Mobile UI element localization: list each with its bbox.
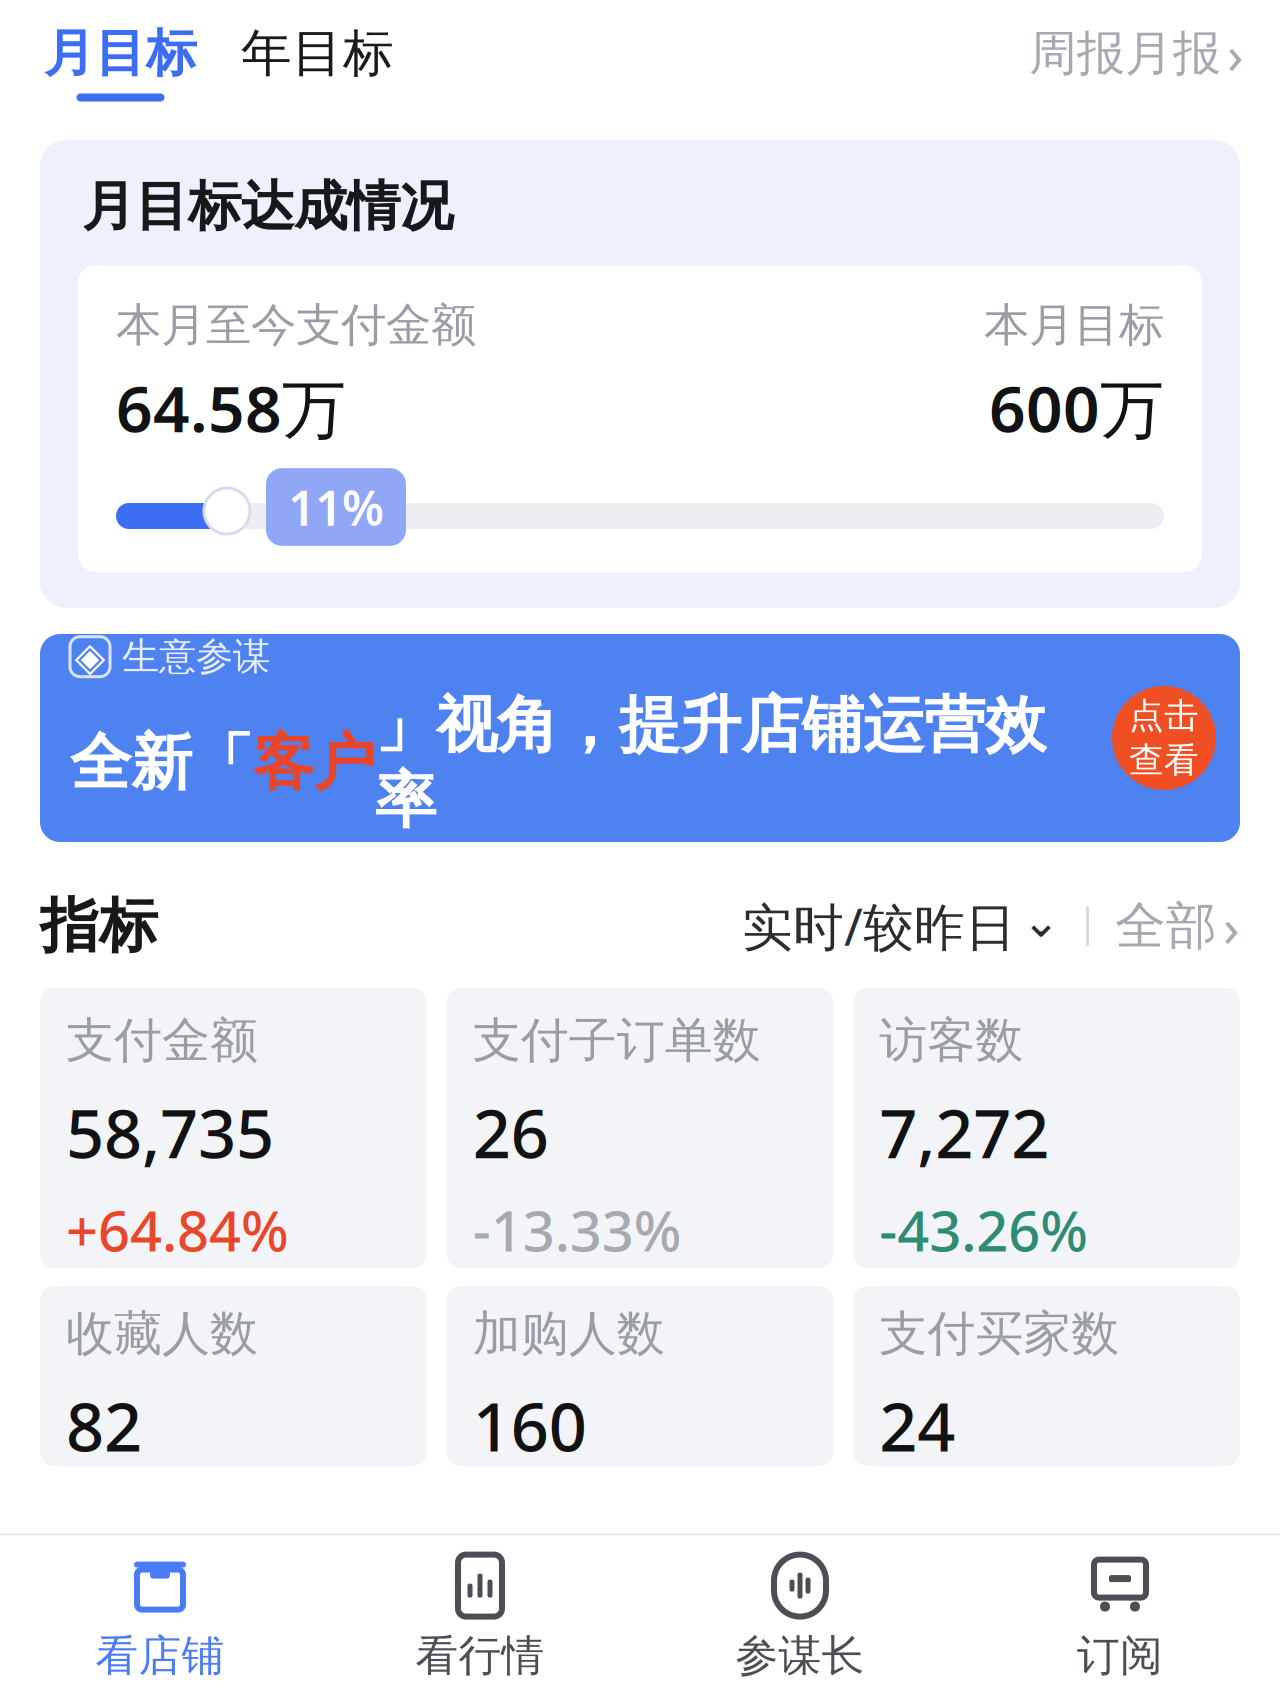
staticText: 」视角，提升店铺运营效率	[375, 688, 1046, 838]
staticText: 600万	[989, 365, 1164, 450]
staticText: ⌄	[1022, 895, 1060, 947]
staticText: 24	[879, 1381, 955, 1470]
staticText: 年目标	[241, 22, 394, 84]
staticText: 订阅	[1077, 1630, 1163, 1682]
button[interactable]: 参谋长	[640, 1536, 960, 1706]
staticText: 支付金额	[66, 1011, 258, 1070]
button[interactable]: 收藏人数	[40, 1286, 427, 1466]
staticText: 实时/较昨日	[742, 892, 1016, 960]
staticText: 26	[473, 1088, 549, 1177]
button[interactable]: 支付子订单数	[447, 988, 833, 1268]
staticText: 生意参谋	[122, 634, 270, 680]
staticText: 周报月报	[1029, 24, 1221, 83]
button[interactable]: ◈	[0, 634, 1280, 842]
staticText: 访客数	[879, 1011, 1023, 1070]
staticText: 11%	[288, 475, 384, 539]
staticText: 支付买家数	[879, 1304, 1119, 1363]
staticText: 7,272	[879, 1088, 1049, 1177]
staticText: ◈	[74, 634, 105, 679]
button[interactable]: 实时/较昨日	[742, 892, 1060, 960]
staticText: 参谋长	[735, 1630, 864, 1682]
staticText: 指标	[40, 890, 158, 962]
staticText: -43.26%	[879, 1193, 1088, 1267]
button[interactable]: 看行情	[320, 1536, 640, 1706]
button[interactable]: 加购人数	[447, 1286, 833, 1466]
button[interactable]: 年目标	[219, 22, 416, 101]
button[interactable]: 周报月报	[1029, 18, 1280, 106]
staticText: 58,735	[66, 1088, 274, 1177]
staticText: 全新「	[70, 725, 253, 801]
staticText: +64.84%	[66, 1193, 289, 1267]
staticText: 看行情	[415, 1630, 544, 1682]
staticText: 查看	[1129, 739, 1199, 782]
staticText: 64.58万	[116, 365, 346, 450]
staticText: 本月目标	[984, 297, 1164, 353]
staticText: 160	[473, 1381, 587, 1470]
staticText: 加购人数	[473, 1304, 665, 1363]
staticText: 全部	[1115, 895, 1217, 957]
staticText: -13.33%	[473, 1193, 682, 1267]
button[interactable]: 访客数	[853, 988, 1240, 1268]
staticText: 点击	[1129, 694, 1199, 737]
staticText: ›	[1227, 18, 1244, 89]
staticText: 看店铺	[95, 1630, 224, 1682]
button[interactable]: 支付金额	[40, 988, 427, 1268]
button[interactable]: 月目标	[0, 22, 219, 101]
staticText: 月目标	[44, 22, 197, 84]
staticText: 月目标达成情况	[82, 174, 453, 239]
button[interactable]: 全部	[1115, 891, 1240, 961]
button[interactable]: 看店铺	[0, 1536, 320, 1706]
staticText: 客户	[253, 725, 375, 801]
staticText: 82	[66, 1381, 142, 1470]
button[interactable]: 订阅	[960, 1536, 1280, 1706]
staticText: 本月至今支付金额	[116, 297, 476, 353]
staticText: 支付子订单数	[473, 1011, 761, 1070]
staticText: ›	[1223, 891, 1240, 961]
button[interactable]: 支付买家数	[853, 1286, 1240, 1466]
staticText: 收藏人数	[66, 1304, 258, 1363]
